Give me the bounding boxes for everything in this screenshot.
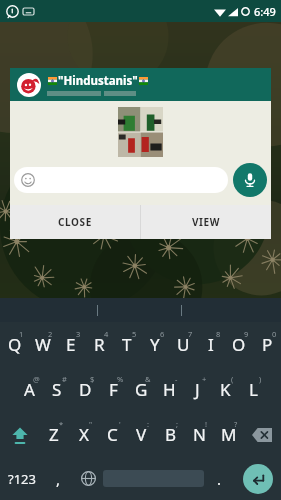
staticText: * [59,419,64,429]
staticText: 1 [19,329,24,339]
button[interactable]: Change language [73,457,103,500]
staticText: X [79,423,89,446]
staticText: . [217,469,222,489]
staticText: P [262,333,273,356]
staticText: N [193,423,206,446]
staticText: 4 [104,329,109,339]
button[interactable]: G [127,367,155,412]
staticText: D [79,378,92,401]
staticText: ?123 [8,470,36,488]
staticText: Y [150,333,160,356]
button[interactable]: E [57,322,85,367]
staticText: L [249,378,258,401]
staticText: I [208,333,214,356]
button[interactable]: N [185,412,214,457]
button[interactable]: O [225,322,253,367]
button[interactable]: U [169,322,197,367]
staticText: M [221,423,237,446]
staticText: - [175,374,178,384]
staticText: 8 [216,329,221,339]
button[interactable]: Q [0,322,29,367]
staticText: G [135,378,148,401]
button[interactable]: T [113,322,141,367]
staticText: Q [8,333,22,356]
staticText: 0 [272,329,277,339]
staticText: VIEW [192,215,221,229]
staticText: " [89,419,93,429]
button[interactable]: VIEW [141,205,271,239]
button[interactable]: K [211,367,239,412]
staticText: 5 [132,329,137,339]
button[interactable]: L [239,367,267,412]
staticText: F [109,378,118,401]
staticText: # [62,374,67,384]
staticText: E [66,333,76,356]
staticText: CLOSE [58,215,92,229]
button[interactable]: R [85,322,113,367]
staticText: ' [119,419,121,429]
button[interactable]: , [43,457,73,500]
button[interactable]: A [15,367,43,412]
button[interactable]: "Hindustanis" [10,68,271,101]
staticText: K [220,378,231,401]
staticText: S [52,378,62,401]
button[interactable]: J [183,367,211,412]
button[interactable]: F [99,367,127,412]
button[interactable]: B [156,412,185,457]
staticText: : [147,419,150,429]
staticText: C [107,423,118,446]
staticText: ? [234,419,238,429]
button[interactable]: W [29,322,57,367]
staticText: U [177,333,190,356]
staticText: R [94,333,105,356]
staticText: % [117,374,124,384]
button[interactable]: S [43,367,71,412]
button[interactable]: ?123 [0,457,43,500]
staticText: Z [49,423,59,446]
staticText: , [56,469,61,489]
staticText: 9 [244,329,249,339]
staticText: ( [231,374,234,384]
staticText: & [145,374,151,384]
button[interactable]: V [127,412,156,457]
staticText: 3 [76,329,81,339]
button[interactable]: Y [141,322,169,367]
button[interactable]: Z [39,412,69,457]
staticText: B [165,423,177,446]
button[interactable]: I [197,322,225,367]
staticText: "Hindustanis" [58,73,138,89]
staticText: O [232,333,246,356]
staticText: 2 [48,329,53,339]
staticText: ! [205,419,208,429]
staticText: ; [176,419,179,429]
staticText: 6 [160,329,165,339]
button[interactable]: D [71,367,99,412]
staticText: 6:49 [254,4,276,19]
staticText: $ [90,374,95,384]
staticText: ) [259,374,262,384]
button[interactable]: Voice message [233,163,267,197]
button[interactable]: Shift [0,412,39,457]
button[interactable]: X [69,412,98,457]
staticText: J [195,378,200,401]
button[interactable]: P [253,322,281,367]
button[interactable]: M [214,412,243,457]
staticText: H [163,378,176,401]
staticText: + [202,374,207,384]
staticText: T [122,333,132,356]
staticText: V [136,423,147,446]
button[interactable] [14,167,228,193]
staticText: 7 [188,329,193,339]
button[interactable]: CLOSE [10,205,140,239]
button[interactable]: C [98,412,127,457]
button[interactable]: Backspace [243,412,281,457]
staticText: A [24,378,35,401]
button[interactable]: . [204,457,234,500]
staticText: @ [33,374,40,384]
button[interactable]: Enter [243,464,273,494]
button[interactable]: H [155,367,183,412]
staticText: W [35,333,51,356]
